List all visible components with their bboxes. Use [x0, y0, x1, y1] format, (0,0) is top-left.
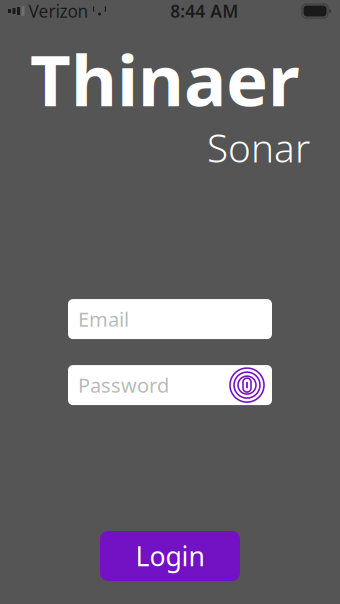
button[interactable]: Login	[100, 531, 240, 581]
staticText: 8:44 AM	[170, 0, 238, 22]
button[interactable]: Email	[68, 299, 272, 339]
staticText: Thinaer	[30, 32, 300, 126]
staticText: Login	[135, 538, 204, 574]
button[interactable]: Password	[68, 365, 272, 405]
staticText: Sonar	[207, 122, 310, 173]
staticText: Email	[78, 306, 129, 332]
staticText: Verizon	[28, 0, 88, 22]
staticText: Password	[78, 372, 169, 398]
